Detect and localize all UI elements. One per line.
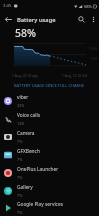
staticText: Battery usage: [17, 16, 56, 24]
staticText: 1 Aug, 12:10 left: [62, 73, 87, 77]
staticText: 50%: [91, 57, 98, 61]
staticText: 7%: [17, 157, 23, 162]
button[interactable]: Search: [75, 12, 87, 27]
button[interactable]: Camera: [0, 128, 99, 146]
staticText: 58%: [15, 26, 36, 40]
staticText: 7%: [17, 193, 23, 198]
staticText: 100%: [89, 47, 98, 51]
staticText: 7%: [17, 175, 23, 180]
staticText: 32%: [17, 103, 25, 108]
staticText: 12%: [17, 121, 25, 126]
staticText: 7%: [17, 210, 23, 215]
staticText: viber: [17, 94, 29, 101]
staticText: BATTERY USAGE SINCE FULL CHARGE: [14, 83, 85, 88]
button[interactable]: Gallery: [0, 182, 99, 200]
button[interactable]: GFXBench: [0, 146, 99, 164]
staticText: Gallery: [17, 184, 33, 191]
staticText: GFXBench: [17, 148, 40, 155]
staticText: Google Play services: [17, 201, 63, 208]
staticText: 58%: [84, 4, 92, 9]
button[interactable]: Voice calls: [0, 110, 99, 128]
button[interactable]: More options: [87, 12, 99, 27]
staticText: Camera: [17, 130, 35, 137]
staticText: 7%: [17, 139, 23, 144]
button[interactable]: BATTERY USAGE SINCE FULL CHARGE: [0, 82, 99, 89]
staticText: 3:45: [3, 3, 12, 9]
staticText: 1 Aug, 20:14 ago: [12, 73, 38, 77]
button[interactable]: Google Play services: [0, 200, 99, 216]
staticText: Voice calls: [17, 112, 40, 119]
button[interactable]: viber: [0, 92, 99, 110]
staticText: OnePlus Launcher: [17, 166, 59, 173]
button[interactable]: Back: [0, 12, 17, 27]
button[interactable]: OnePlus Launcher: [0, 164, 99, 182]
